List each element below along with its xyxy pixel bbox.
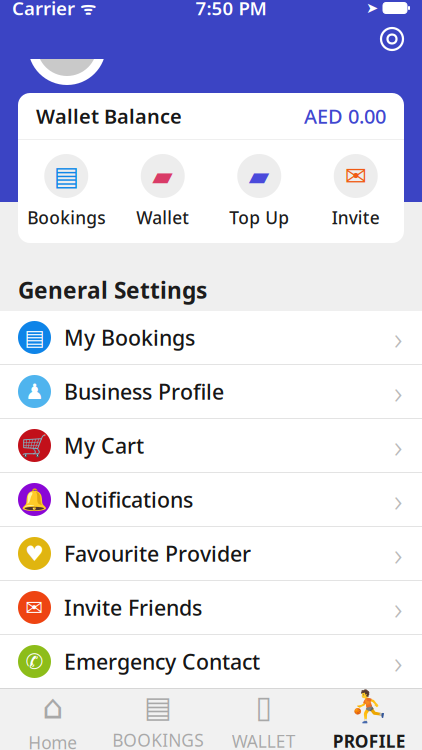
button[interactable]: ▰ [211,154,307,229]
button[interactable]: ✉ [307,154,404,229]
staticText: › [394,640,402,683]
staticText: Top Up [229,206,289,229]
button[interactable]: 🛒 [0,419,422,472]
staticText: AED 0.00 [304,103,386,129]
button[interactable]: ⌂ [0,689,105,750]
staticText: ➤ [366,0,378,16]
staticText: › [394,316,402,359]
staticText: Invite [332,206,380,229]
staticText: › [394,370,402,413]
staticText: Invite Friends [64,593,202,622]
button[interactable]: ▯ [211,689,316,750]
staticText: › [394,586,402,629]
button[interactable]: ♥ [0,527,422,580]
button[interactable]: ▰ [114,154,211,229]
staticText: My Bookings [64,323,195,352]
staticText: 🛒 [21,433,48,458]
button[interactable]: ▤ [18,154,114,229]
staticText: General Settings [18,275,207,305]
staticText: ▯ [255,690,272,724]
staticText: Wallet Balance [36,103,182,129]
staticText: My Cart [64,431,144,460]
button[interactable]: ♟ [0,365,422,418]
staticText: ▰ [152,161,173,191]
staticText: 7:50 PM [195,0,266,20]
staticText: 🔔 [21,487,48,512]
button[interactable]: 🔔 [0,473,422,526]
staticText: PROFILE [333,729,406,750]
staticText: ✉ [25,595,43,620]
staticText: ♟ [25,379,44,404]
staticText: ✆ [25,649,43,674]
staticText: ᯤ [75,0,96,19]
staticText: Wallet [136,206,189,229]
staticText: ♥ [25,541,44,566]
staticText: ⌂ [42,688,63,726]
staticText: Business Profile [64,377,224,406]
staticText: ⛹ [350,689,388,724]
staticText: WALLET [232,729,296,750]
button[interactable]: Settings [370,19,414,59]
staticText: Favourite Provider [64,539,251,568]
staticText: ▤ [144,690,172,724]
staticText: › [394,478,402,521]
staticText: ✉ [345,161,367,191]
button[interactable]: ✉ [0,581,422,634]
button[interactable]: ▤ [0,311,422,364]
staticText: Home [28,731,77,750]
staticText: Bookings [27,206,105,229]
staticText: ▰ [249,161,270,191]
staticText: ▤ [24,325,44,350]
staticText: Emergency Contact [64,647,260,676]
button[interactable]: ⛹ [316,689,422,750]
staticText: Carrier [12,0,75,20]
staticText: ▤ [54,161,79,191]
staticText: BOOKINGS [112,729,204,750]
staticText: Notifications [64,485,193,514]
button[interactable]: ▤ [105,689,211,750]
staticText: › [394,424,402,467]
button[interactable]: ✆ [0,635,422,688]
staticText: › [394,532,402,575]
